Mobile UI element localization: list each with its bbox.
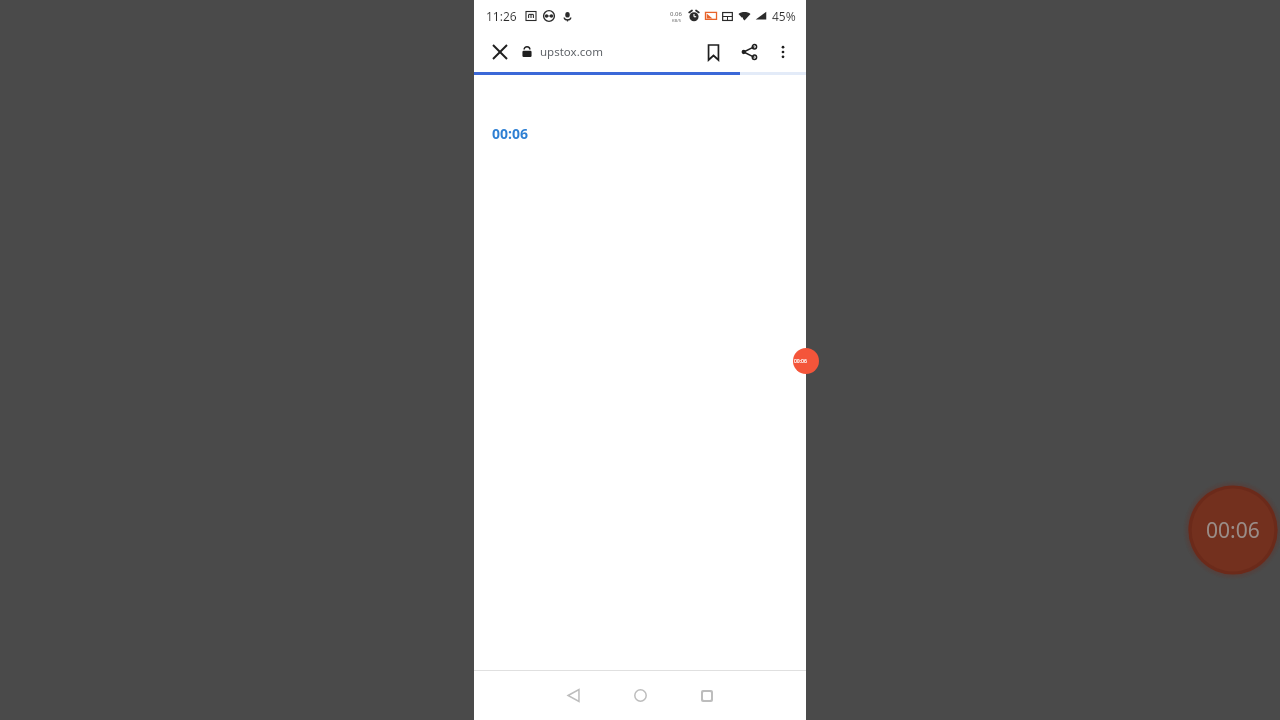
staticText: 11:26	[486, 8, 517, 24]
button[interactable]: Bookmark	[697, 36, 729, 68]
button[interactable]: Home	[614, 671, 666, 720]
staticText: 00:06	[794, 358, 807, 365]
staticText: 00:06	[1206, 516, 1260, 545]
staticText: upstox.com	[540, 44, 603, 60]
button[interactable]: Share	[733, 36, 765, 68]
staticText: 45%	[772, 8, 796, 24]
button[interactable]: More options	[767, 36, 799, 68]
button[interactable]: upstox.com	[521, 31, 697, 72]
staticText: KB/S	[672, 18, 681, 23]
staticText: 0.06	[670, 10, 682, 18]
button[interactable]: Close	[485, 37, 515, 67]
button[interactable]: Back	[547, 671, 599, 720]
button[interactable]: Recent apps	[681, 671, 733, 720]
button[interactable]: Timer 00:06	[793, 348, 819, 374]
staticText: 00:06	[492, 124, 528, 143]
